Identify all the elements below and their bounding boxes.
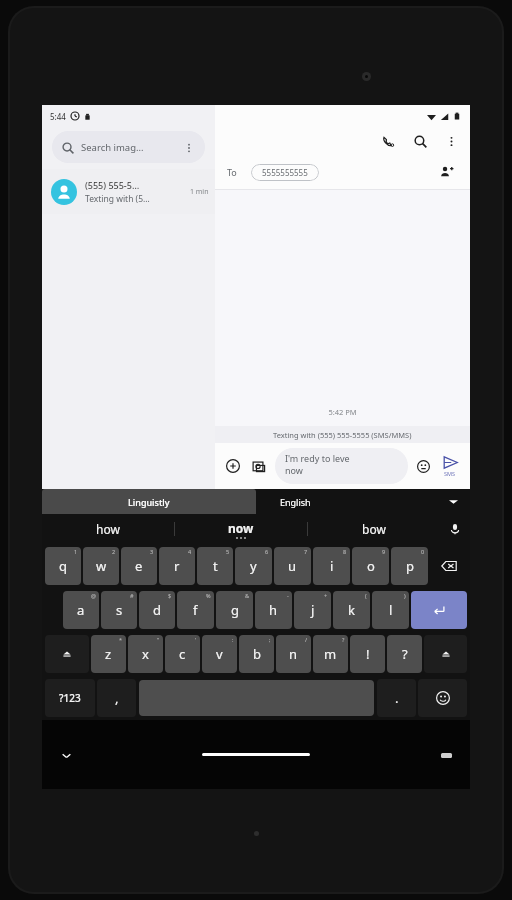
staticText: y (250, 557, 257, 575)
button[interactable]: Call (376, 129, 400, 153)
button[interactable]: Switch keyboard (436, 745, 456, 765)
button[interactable]: $ (139, 591, 175, 629)
staticText: 6 (265, 548, 269, 555)
button[interactable]: - (255, 591, 292, 629)
staticText: # (130, 592, 134, 599)
staticText: w (96, 557, 107, 575)
button[interactable]: Send SMS (437, 455, 463, 477)
staticText: ! (366, 645, 370, 663)
button[interactable]: 9 (352, 547, 389, 585)
button[interactable]: ( (333, 591, 370, 629)
button[interactable]: , (97, 679, 136, 717)
button[interactable]: Linguistly (42, 489, 256, 514)
staticText: To (227, 166, 237, 178)
button[interactable]: 6 (235, 547, 272, 585)
staticText: Linguistly (128, 496, 170, 508)
staticText: m (324, 645, 337, 663)
button[interactable]: Emoji (412, 455, 434, 477)
staticText: @ (91, 592, 96, 599)
button[interactable]: Voice input (440, 514, 470, 544)
button[interactable]: / (276, 635, 311, 673)
staticText: e (135, 557, 143, 575)
button[interactable]: + (294, 591, 331, 629)
staticText: ; (269, 636, 271, 643)
button[interactable]: bow (308, 514, 440, 544)
button[interactable]: how (42, 514, 174, 544)
staticText: & (245, 592, 250, 599)
button[interactable]: Attach (222, 455, 244, 477)
staticText: / (305, 636, 308, 643)
staticText: 0 (421, 548, 425, 555)
button[interactable]: ?123 (45, 679, 95, 717)
staticText: 5:44 (50, 111, 66, 122)
staticText: now (228, 520, 254, 536)
button[interactable]: 7 (274, 547, 311, 585)
button[interactable]: 2 (83, 547, 119, 585)
staticText: g (231, 601, 239, 619)
button[interactable]: Search (408, 129, 432, 153)
staticText: Search imag… (81, 141, 183, 154)
staticText: ) (404, 592, 406, 599)
button[interactable]: ) (372, 591, 409, 629)
button[interactable]: now (175, 514, 307, 544)
staticText: 5:42 PM (215, 407, 470, 417)
staticText: r (174, 557, 180, 575)
button[interactable]: * (91, 635, 126, 673)
button[interactable]: 0 (391, 547, 428, 585)
button[interactable]: Shift (45, 635, 89, 673)
staticText: t (213, 557, 218, 575)
button[interactable]: 5555555555 (251, 164, 319, 181)
button[interactable]: 5 (197, 547, 233, 585)
staticText: now (285, 464, 303, 476)
button[interactable]: Add people (436, 161, 458, 183)
staticText: 9 (382, 548, 386, 555)
staticText: o (367, 557, 375, 575)
staticText: b (253, 645, 261, 663)
button[interactable]: 4 (159, 547, 195, 585)
button[interactable]: Camera (248, 455, 270, 477)
button[interactable]: & (216, 591, 253, 629)
staticText: 4 (188, 548, 192, 555)
button[interactable]: 8 (313, 547, 350, 585)
button[interactable]: 3 (121, 547, 157, 585)
button[interactable]: " (128, 635, 163, 673)
button[interactable]: (555) 555-5… (42, 169, 215, 214)
button[interactable]: ! (350, 635, 385, 673)
button[interactable]: Enter (411, 591, 467, 629)
staticText: * (119, 636, 123, 643)
button[interactable]: Emoji keyboard (418, 679, 467, 717)
button[interactable]: 1 (45, 547, 81, 585)
staticText: j (311, 601, 315, 619)
button[interactable]: Shift (424, 635, 467, 673)
button[interactable]: # (101, 591, 137, 629)
button[interactable]: English (256, 489, 470, 514)
button[interactable]: Search imag… (52, 131, 205, 163)
button[interactable]: : (202, 635, 237, 673)
staticText: l (389, 601, 393, 619)
button[interactable]: ' (165, 635, 200, 673)
staticText: 7 (304, 548, 308, 555)
button[interactable]: Backspace (430, 547, 467, 585)
staticText: p (406, 557, 414, 575)
staticText: 1 min (190, 187, 209, 197)
staticText: + (324, 592, 328, 599)
button[interactable]: More options (440, 130, 462, 152)
staticText: bow (362, 521, 386, 537)
staticText: u (288, 557, 297, 575)
button[interactable]: % (177, 591, 214, 629)
button[interactable]: Hide keyboard (56, 745, 76, 765)
staticText: ? (402, 645, 408, 663)
button[interactable]: . (377, 679, 416, 717)
button[interactable]: @ (63, 591, 99, 629)
staticText: a (77, 601, 85, 619)
button[interactable]: ? (387, 635, 422, 673)
button[interactable]: I'm redy to leve (275, 448, 408, 484)
staticText: v (216, 645, 223, 663)
button[interactable]: ? (313, 635, 348, 673)
button[interactable]: ; (239, 635, 274, 673)
staticText: . (395, 689, 399, 707)
staticText: ?123 (59, 691, 81, 705)
staticText: English (280, 496, 311, 508)
staticText: 1 (74, 548, 78, 555)
